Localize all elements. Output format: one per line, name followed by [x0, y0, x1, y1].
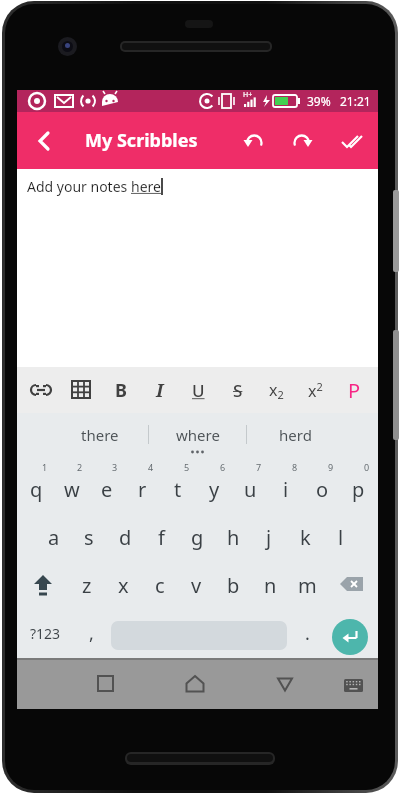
button[interactable]: d — [107, 513, 143, 561]
button[interactable]: ?123 — [17, 609, 73, 658]
staticText: 2 — [77, 461, 83, 473]
staticText: U — [192, 379, 205, 402]
staticText: h — [227, 524, 240, 551]
staticText: x2 — [269, 379, 284, 402]
staticText: e — [101, 476, 113, 503]
button[interactable] — [278, 112, 326, 169]
staticText: 9 — [328, 461, 334, 473]
staticText: My Scribbles — [85, 128, 198, 153]
button[interactable]: P — [335, 367, 374, 413]
button[interactable]: s — [71, 513, 107, 561]
button[interactable]: b — [215, 561, 252, 609]
staticText: here — [131, 177, 161, 196]
button[interactable] — [327, 614, 373, 660]
button[interactable] — [21, 367, 61, 413]
staticText: m — [298, 572, 317, 599]
staticText: I — [156, 378, 164, 403]
staticText: 21:21 — [340, 93, 371, 109]
staticText: v — [191, 572, 202, 599]
staticText: P — [348, 377, 361, 404]
button[interactable] — [326, 112, 378, 169]
button[interactable] — [173, 661, 217, 706]
button[interactable]: herd — [247, 413, 344, 456]
staticText: g — [191, 524, 204, 551]
button[interactable]: 1 — [19, 456, 54, 513]
staticText: q — [30, 476, 43, 503]
button[interactable]: S — [218, 367, 257, 413]
staticText: 6 — [220, 461, 226, 473]
button[interactable]: m — [289, 561, 326, 609]
staticText: 0 — [364, 461, 370, 473]
staticText: ?123 — [30, 624, 61, 643]
staticText: 39% — [307, 93, 331, 109]
button[interactable] — [337, 668, 369, 700]
button[interactable] — [230, 112, 278, 169]
staticText: 1 — [42, 461, 48, 473]
button[interactable] — [326, 561, 378, 609]
button[interactable]: where — [149, 413, 246, 456]
staticText: b — [227, 572, 240, 599]
button[interactable]: 9 — [304, 456, 340, 513]
button[interactable]: c — [141, 561, 178, 609]
staticText: f — [158, 524, 165, 551]
button[interactable] — [17, 561, 69, 609]
button[interactable]: , — [73, 609, 109, 658]
staticText: k — [300, 524, 311, 551]
button[interactable]: h — [215, 513, 251, 561]
button[interactable]: v — [178, 561, 215, 609]
button[interactable]: 3 — [89, 456, 124, 513]
button[interactable]: f — [143, 513, 179, 561]
staticText: z — [82, 572, 92, 599]
staticText: 8 — [292, 461, 298, 473]
button[interactable]: 4 — [124, 456, 160, 513]
staticText: S — [233, 379, 243, 402]
staticText: a — [48, 524, 60, 551]
staticText: x2 — [308, 379, 323, 402]
button[interactable]: I — [140, 367, 179, 413]
button[interactable]: there — [51, 413, 148, 456]
staticText: d — [119, 524, 132, 551]
button[interactable]: a — [36, 513, 71, 561]
button[interactable]: 6 — [196, 456, 232, 513]
staticText: , — [89, 621, 94, 646]
button[interactable]: j — [251, 513, 287, 561]
staticText: p — [352, 476, 365, 503]
staticText: there — [81, 425, 119, 445]
staticText: w — [64, 476, 80, 503]
staticText: j — [266, 524, 272, 551]
button[interactable] — [17, 112, 73, 169]
button[interactable] — [263, 661, 307, 706]
button[interactable]: 2 — [54, 456, 89, 513]
button[interactable] — [61, 367, 101, 413]
button[interactable]: k — [287, 513, 323, 561]
staticText: B — [115, 378, 127, 403]
button[interactable]: 7 — [232, 456, 268, 513]
staticText: 3 — [112, 461, 118, 473]
staticText: i — [283, 476, 289, 503]
button[interactable]: 0 — [340, 456, 376, 513]
button[interactable]: x2 — [296, 367, 335, 413]
button[interactable]: z — [69, 561, 105, 609]
staticText: 7 — [256, 461, 262, 473]
button[interactable]: l — [323, 513, 359, 561]
button[interactable]: x2 — [257, 367, 296, 413]
button[interactable]: 8 — [268, 456, 304, 513]
button[interactable]: x — [105, 561, 141, 609]
button[interactable]: n — [252, 561, 289, 609]
button[interactable]: U — [179, 367, 218, 413]
staticText: herd — [279, 425, 312, 445]
button[interactable]: Add your notes — [17, 169, 378, 367]
staticText: x — [118, 572, 129, 599]
staticText: 4 — [148, 461, 154, 473]
staticText: . — [305, 621, 310, 646]
button[interactable]: g — [179, 513, 215, 561]
staticText: c — [155, 572, 165, 599]
staticText: s — [84, 524, 94, 551]
staticText: r — [138, 476, 147, 503]
staticText: n — [264, 572, 277, 599]
button[interactable]: B — [101, 367, 140, 413]
button[interactable]: . — [287, 609, 327, 658]
button[interactable]: 5 — [160, 456, 196, 513]
button[interactable] — [83, 661, 127, 706]
